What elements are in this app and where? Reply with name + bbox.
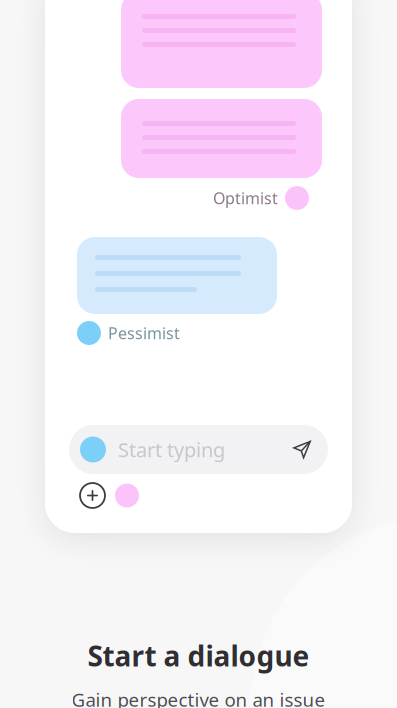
button[interactable]: Choose persona [115, 483, 139, 507]
staticText: Pessimist [108, 322, 180, 344]
staticText: Optimist [213, 187, 278, 209]
staticText: Start typing [118, 436, 225, 463]
staticText: Start a dialogue [87, 637, 309, 674]
button[interactable]: Add [80, 483, 105, 508]
button[interactable]: Start typing [69, 425, 328, 474]
staticText: Gain perspective on an issue [71, 687, 325, 708]
